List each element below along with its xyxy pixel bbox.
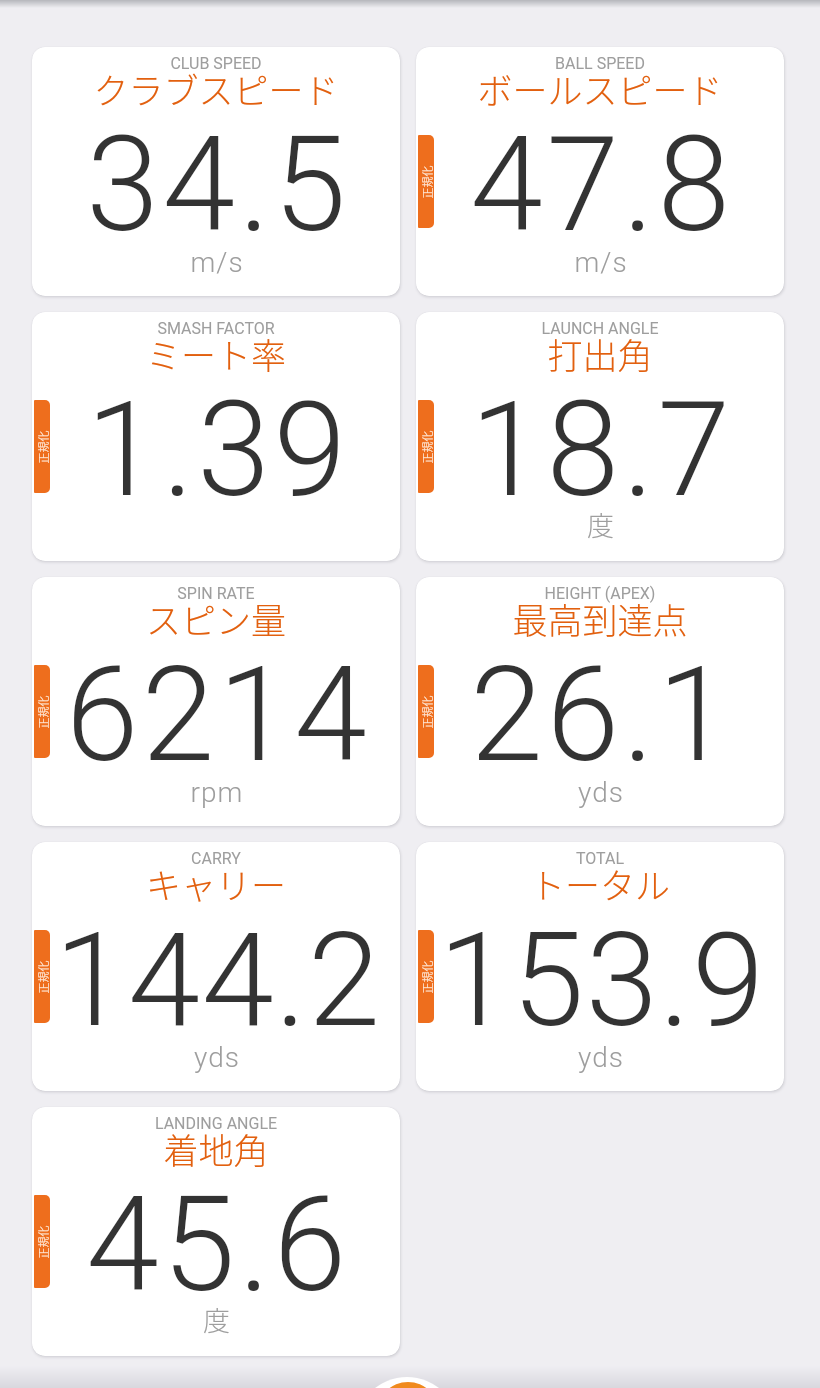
staticText: 正規化 — [418, 665, 434, 758]
staticText: BALL SPEED — [416, 54, 784, 73]
staticText: SPIN RATE — [32, 584, 400, 603]
staticText: 6214 — [34, 638, 400, 792]
staticText: LAUNCH ANGLE — [416, 319, 784, 338]
staticText: 正規化 — [418, 135, 434, 228]
staticText: m/s — [33, 246, 400, 279]
staticText: キャリー — [32, 858, 400, 909]
staticText: SMASH FACTOR — [32, 319, 400, 338]
button[interactable]: 正規化 — [34, 1195, 50, 1288]
staticText: CLUB SPEED — [32, 54, 400, 73]
button[interactable]: BALL SPEED — [416, 47, 784, 296]
staticText: ミート率 — [32, 328, 400, 379]
staticText: 度 — [417, 505, 784, 544]
staticText: 45.6 — [34, 1168, 400, 1322]
staticText: クラブスピード — [32, 63, 400, 114]
staticText: 18.7 — [418, 373, 784, 527]
staticText: 26.1 — [418, 638, 784, 792]
staticText: 正規化 — [34, 665, 50, 758]
staticText: 1.39 — [34, 373, 400, 527]
staticText: m/s — [417, 246, 784, 279]
button[interactable]: SPIN RATE — [32, 577, 400, 826]
staticText: 着地角 — [32, 1123, 400, 1174]
button[interactable]: 正規化 — [34, 665, 50, 758]
staticText: yds — [417, 776, 784, 809]
button[interactable]: 正規化 — [418, 665, 434, 758]
staticText: 正規化 — [34, 930, 50, 1023]
button[interactable]: HEIGHT (APEX) — [416, 577, 784, 826]
button[interactable]: CLUB SPEED — [32, 47, 400, 296]
button[interactable]: 正規化 — [418, 135, 434, 228]
staticText: 打出角 — [416, 328, 784, 379]
staticText: 正規化 — [418, 930, 434, 1023]
staticText: 度 — [33, 1300, 400, 1339]
button[interactable]: TOTAL — [416, 842, 784, 1091]
staticText: yds — [417, 1041, 784, 1074]
staticText: 144.2 — [34, 904, 400, 1056]
staticText: 最高到達点 — [416, 593, 784, 644]
button[interactable]: CARRY — [32, 842, 400, 1091]
staticText: 正規化 — [34, 400, 50, 493]
staticText: ボールスピード — [416, 63, 784, 114]
staticText: yds — [33, 1041, 400, 1074]
button[interactable]: 正規化 — [418, 400, 434, 493]
button[interactable]: LANDING ANGLE — [32, 1107, 400, 1356]
button[interactable]: SMASH FACTOR — [32, 312, 400, 561]
staticText: LANDING ANGLE — [32, 1114, 400, 1133]
staticText: TOTAL — [416, 849, 784, 868]
staticText: HEIGHT (APEX) — [416, 584, 784, 603]
button[interactable]: 正規化 — [34, 400, 50, 493]
staticText: 47.8 — [418, 108, 784, 262]
staticText: 34.5 — [34, 108, 400, 262]
staticText: rpm — [33, 776, 400, 809]
staticText: 153.9 — [418, 904, 784, 1056]
button[interactable]: 正規化 — [34, 930, 50, 1023]
staticText: スピン量 — [32, 593, 400, 644]
staticText: 正規化 — [34, 1195, 50, 1288]
staticText: CARRY — [32, 849, 400, 868]
button[interactable]: 正規化 — [418, 930, 434, 1023]
staticText: 正規化 — [418, 400, 434, 493]
button[interactable]: LAUNCH ANGLE — [416, 312, 784, 561]
staticText: トータル — [416, 858, 784, 909]
